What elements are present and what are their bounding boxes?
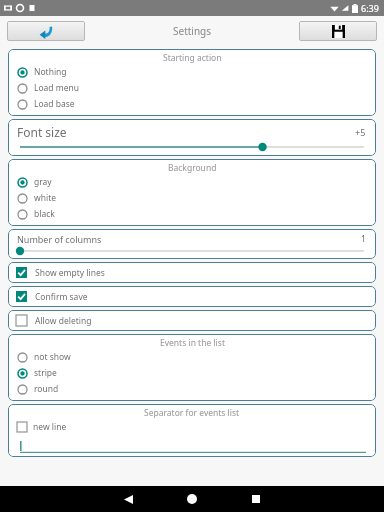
button[interactable]: Load menu xyxy=(8,80,376,96)
staticText: Allow deleting xyxy=(35,315,92,327)
button[interactable]: Nothing xyxy=(8,64,376,80)
button[interactable]: Back xyxy=(7,21,85,41)
staticText: gray xyxy=(34,176,52,188)
button[interactable]: Save xyxy=(299,21,377,41)
button[interactable]: Confirm save xyxy=(8,286,376,307)
staticText: +5 xyxy=(355,126,366,138)
button[interactable]: Allow deleting xyxy=(8,310,376,331)
button[interactable] xyxy=(8,140,376,154)
staticText: 1 xyxy=(361,233,366,245)
button[interactable]: stripe xyxy=(8,365,376,381)
staticText: Events in the list xyxy=(160,337,225,349)
button[interactable]: white xyxy=(8,190,376,206)
button[interactable]: new line xyxy=(8,419,376,435)
button[interactable]: Recent apps xyxy=(236,486,276,512)
staticText: new line xyxy=(33,421,67,433)
button[interactable]: not show xyxy=(8,349,376,365)
staticText: Nothing xyxy=(34,66,67,78)
staticText: round xyxy=(34,383,59,395)
button[interactable]: black xyxy=(8,206,376,222)
staticText: not show xyxy=(34,351,71,363)
staticText: 6:39 xyxy=(361,2,379,14)
staticText: Separator for events list xyxy=(144,407,240,419)
staticText: black xyxy=(34,208,55,220)
staticText: Number of columns xyxy=(17,233,102,245)
staticText: Load menu xyxy=(34,82,80,94)
staticText: Background xyxy=(168,162,217,174)
staticText: Confirm save xyxy=(35,291,88,303)
button[interactable]: Back xyxy=(108,486,148,512)
staticText: Settings xyxy=(173,24,212,38)
button[interactable] xyxy=(20,441,366,453)
staticText: stripe xyxy=(34,367,57,379)
staticText: Load base xyxy=(34,98,75,110)
staticText: Font size xyxy=(17,124,67,140)
button[interactable]: gray xyxy=(8,174,376,190)
staticText: Show empty lines xyxy=(35,267,105,279)
button[interactable]: Load base xyxy=(8,96,376,112)
button[interactable]: round xyxy=(8,381,376,397)
button[interactable] xyxy=(8,245,376,257)
button[interactable]: Home xyxy=(172,486,212,512)
staticText: white xyxy=(34,192,56,204)
button[interactable]: Show empty lines xyxy=(8,262,376,283)
staticText: Starting action xyxy=(163,52,222,64)
